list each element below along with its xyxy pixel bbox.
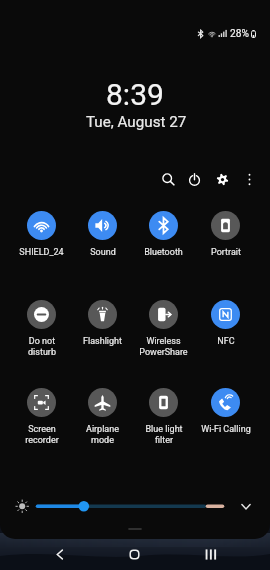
button[interactable]: Flashlight (72, 300, 133, 347)
staticText: Tue, August 27 (86, 113, 187, 131)
staticText: Portrait (211, 247, 241, 258)
button[interactable]: Sound (72, 211, 133, 258)
staticText: Flashlight (83, 336, 122, 347)
button[interactable]: More options (241, 171, 258, 188)
button[interactable]: Settings (214, 171, 231, 188)
button[interactable]: Power off (186, 171, 203, 188)
button[interactable]: Blue light filter (133, 388, 194, 446)
staticText: Screen recorder (25, 424, 59, 446)
staticText: Blue light filter (145, 424, 183, 446)
staticText: 28% (230, 28, 249, 40)
button[interactable]: Screen recorder (11, 388, 72, 446)
button[interactable]: Home (118, 539, 150, 570)
button[interactable] (0, 492, 270, 520)
button[interactable]: Wireless PowerShare (133, 300, 194, 358)
button[interactable]: Recent apps (194, 539, 226, 570)
button[interactable]: Portrait (195, 211, 256, 258)
staticText: Do not disturb (28, 336, 56, 358)
staticText: Airplane mode (86, 424, 119, 446)
staticText: Wi-Fi Calling (201, 424, 251, 435)
button[interactable]: Back (43, 539, 75, 570)
staticText: 8:39 (106, 77, 164, 112)
button[interactable]: Bluetooth (133, 211, 194, 258)
button[interactable]: SHIELD_24 (11, 211, 72, 258)
staticText: Sound (90, 247, 116, 258)
button[interactable]: Search (160, 171, 177, 188)
staticText: Wireless PowerShare (139, 336, 188, 358)
staticText: Bluetooth (144, 247, 183, 258)
button[interactable]: Airplane mode (72, 388, 133, 446)
staticText: NFC (217, 336, 235, 347)
button[interactable]: Do not disturb (11, 300, 72, 358)
staticText: SHIELD_24 (19, 247, 64, 258)
button[interactable]: Wi-Fi Calling (195, 388, 256, 435)
button[interactable]: NFC (195, 300, 256, 347)
